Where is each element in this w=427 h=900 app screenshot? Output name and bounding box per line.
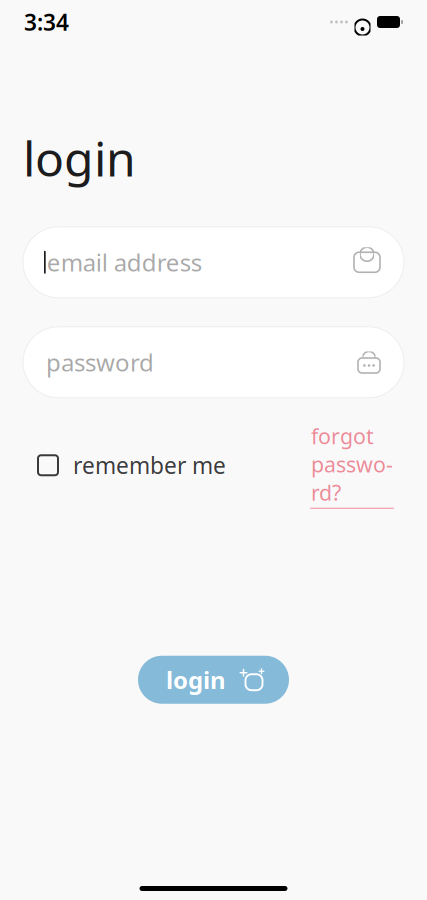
staticText: email address: [47, 246, 202, 278]
button[interactable]: email address: [23, 227, 404, 298]
button[interactable]: password: [23, 327, 404, 398]
staticText: 3:34: [24, 7, 69, 37]
button[interactable]: remember me: [38, 443, 226, 487]
staticText: login: [23, 126, 136, 190]
staticText: login: [166, 664, 226, 696]
button[interactable]: forgot password?: [310, 415, 394, 516]
button[interactable]: login: [138, 656, 289, 704]
staticText: forgot password?: [311, 422, 393, 507]
staticText: remember me: [73, 450, 226, 480]
staticText: password: [46, 346, 154, 378]
